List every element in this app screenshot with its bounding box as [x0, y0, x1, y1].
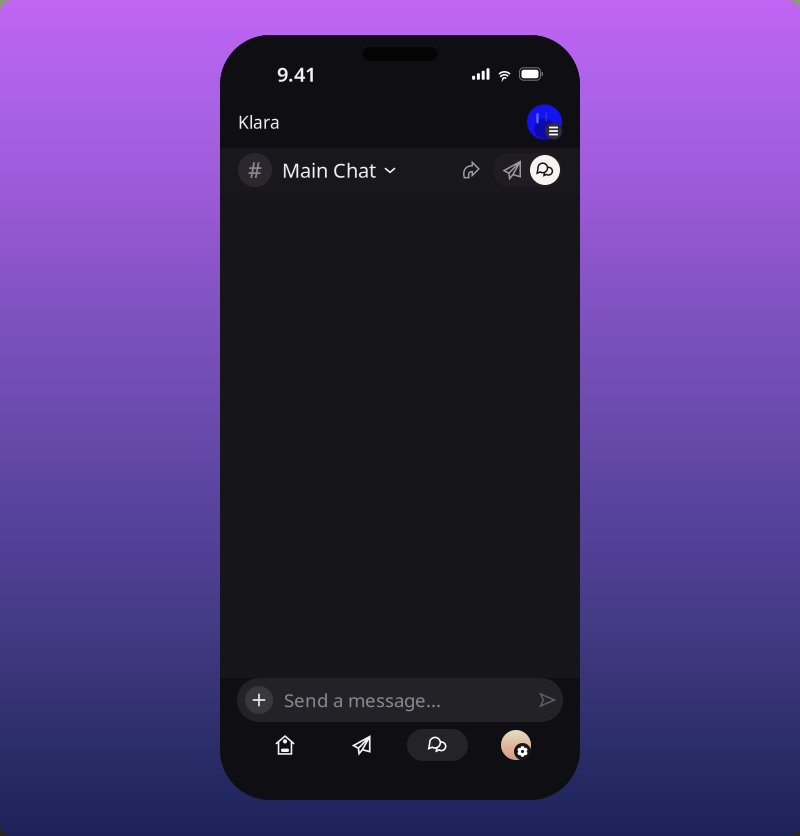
staticText: Send a message...	[284, 688, 441, 712]
button[interactable]: Chats	[407, 729, 468, 761]
button[interactable]: Chat mode	[493, 153, 562, 187]
staticText: #	[248, 156, 262, 184]
button[interactable]: Home	[255, 729, 315, 761]
button[interactable]: Settings	[501, 729, 531, 761]
button[interactable]: Messages	[332, 729, 392, 761]
button[interactable]: Send	[540, 692, 555, 707]
staticText: 9.41	[277, 61, 316, 87]
button[interactable]: Profile menu	[527, 104, 562, 139]
button[interactable]: Add attachment	[245, 686, 273, 714]
staticText: Klara	[238, 110, 280, 133]
button[interactable]: Main Chat	[282, 153, 396, 187]
staticText: Main Chat	[282, 157, 376, 183]
button[interactable]: Share	[457, 154, 485, 186]
